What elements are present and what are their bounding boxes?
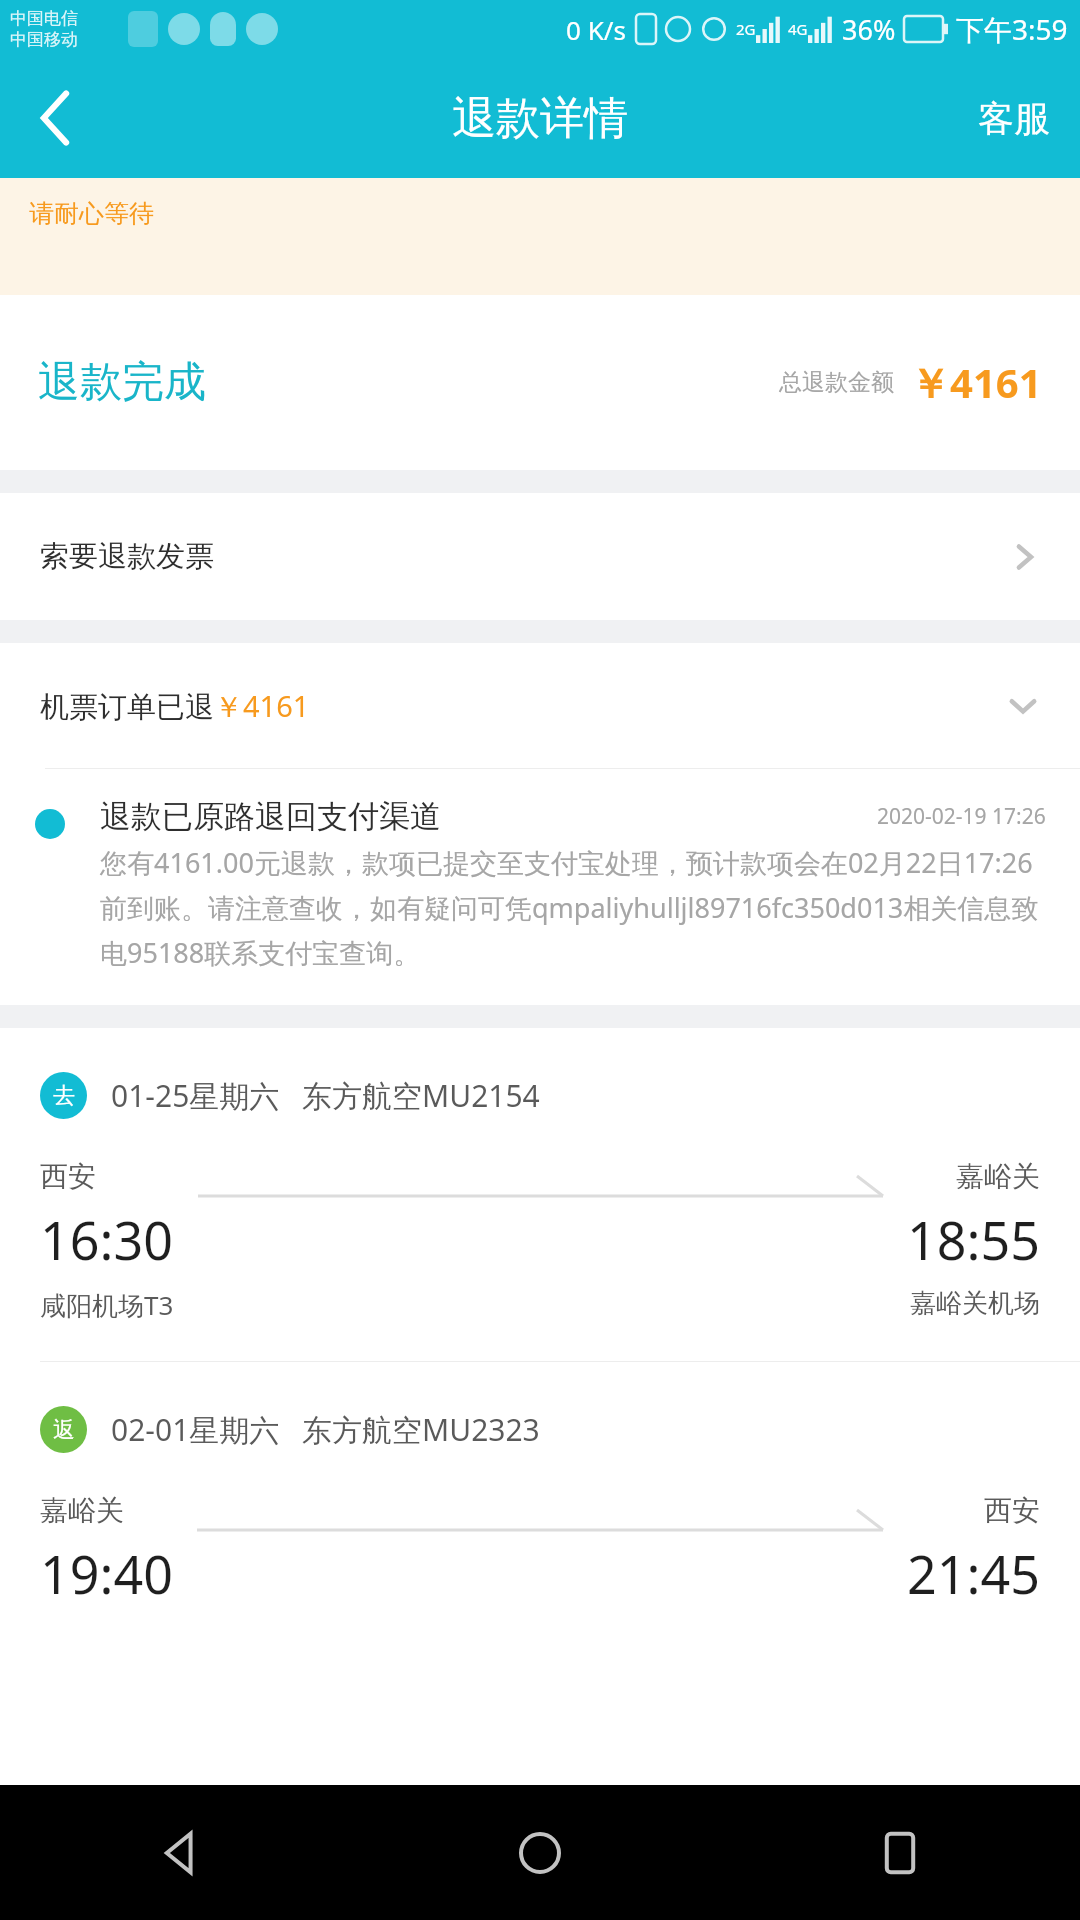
button[interactable]: 索要退款发票 xyxy=(0,493,1080,620)
staticText: 下午3:59 xyxy=(956,10,1068,48)
staticText: 16:30 xyxy=(40,1204,173,1275)
staticText: 嘉峪关 xyxy=(956,1159,1040,1194)
staticText: 嘉峪关机场 xyxy=(910,1287,1040,1320)
staticText: 0 K/s xyxy=(566,12,626,47)
staticText: ￥4161 xyxy=(910,355,1042,410)
button[interactable]: 返回 xyxy=(0,58,110,178)
staticText: 18:55 xyxy=(907,1204,1040,1275)
button[interactable]: 主屏幕 xyxy=(360,1785,720,1920)
staticText: 36% xyxy=(842,11,896,48)
staticText: 返 xyxy=(53,1416,75,1444)
staticText: 东方航空MU2323 xyxy=(302,1409,540,1450)
staticText: 咸阳机场T3 xyxy=(40,1287,174,1323)
button[interactable]: 返回 xyxy=(0,1785,360,1920)
staticText: 机票订单已退￥4161 xyxy=(40,686,310,726)
other: 展开 xyxy=(1006,689,1040,723)
button[interactable]: 机票订单已退￥4161 xyxy=(0,643,1080,768)
staticText: 去 xyxy=(53,1082,75,1110)
staticText: 4G xyxy=(788,19,808,39)
staticText: 01-25星期六 xyxy=(111,1075,280,1116)
staticText: 西安 xyxy=(40,1159,96,1194)
staticText: 您有4161.00元退款，款项已提交至支付宝处理，预计款项会在02月22日17:… xyxy=(100,844,1046,971)
staticText: 请耐心等待 xyxy=(29,198,154,229)
button[interactable]: 最近任务 xyxy=(720,1785,1080,1920)
staticText: 西安 xyxy=(984,1493,1040,1528)
staticText: 索要退款发票 xyxy=(40,538,214,575)
staticText: 总退款金额 xyxy=(779,368,894,397)
staticText: 退款完成 xyxy=(38,356,206,409)
staticText: 中国移动 xyxy=(10,29,78,50)
staticText: 2G xyxy=(736,19,756,39)
staticText: 19:40 xyxy=(40,1538,173,1609)
staticText: 2020-02-19 17:26 xyxy=(877,802,1046,831)
staticText: 客服 xyxy=(978,96,1050,141)
staticText: 东方航空MU2154 xyxy=(302,1075,540,1116)
staticText: 中国电信 xyxy=(10,8,78,29)
staticText: 嘉峪关 xyxy=(40,1493,124,1528)
staticText: 退款已原路退回支付渠道 xyxy=(100,797,441,836)
staticText: 退款详情 xyxy=(452,91,628,146)
staticText: 02-01星期六 xyxy=(111,1409,280,1450)
other: 索要退款发票 xyxy=(1008,541,1040,573)
staticText: 21:45 xyxy=(907,1538,1040,1609)
button[interactable]: 客服 xyxy=(948,58,1080,178)
